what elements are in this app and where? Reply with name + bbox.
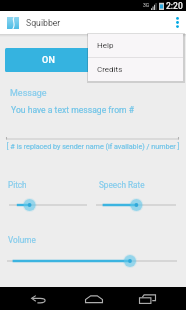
- staticText: Volume: [8, 235, 36, 245]
- button[interactable]: Help: [88, 34, 183, 57]
- button[interactable]: More options: [168, 11, 186, 34]
- button[interactable]: Home: [78, 287, 109, 310]
- staticText: ON: [42, 55, 56, 66]
- staticText: 2:20: [166, 1, 183, 11]
- button[interactable]: Credits: [88, 58, 183, 81]
- button[interactable]: ON: [5, 48, 92, 72]
- button[interactable]: Pitch slider: [1, 197, 95, 213]
- staticText: Credits: [97, 65, 123, 74]
- staticText: Speech Rate: [99, 180, 145, 190]
- staticText: Pitch: [8, 180, 27, 190]
- button[interactable]: Volume slider: [0, 253, 185, 269]
- staticText: [ # is replaced by sender name (if avail…: [0, 142, 186, 150]
- staticText: Squibber: [26, 18, 61, 28]
- staticText: 3G: [143, 2, 150, 8]
- staticText: You have a text message from #: [11, 105, 135, 115]
- staticText: Message: [10, 88, 47, 99]
- button[interactable]: Recent apps: [132, 287, 163, 310]
- button[interactable]: Back: [24, 287, 54, 310]
- staticText: Help: [97, 41, 114, 50]
- button[interactable]: Speech rate slider: [88, 197, 184, 213]
